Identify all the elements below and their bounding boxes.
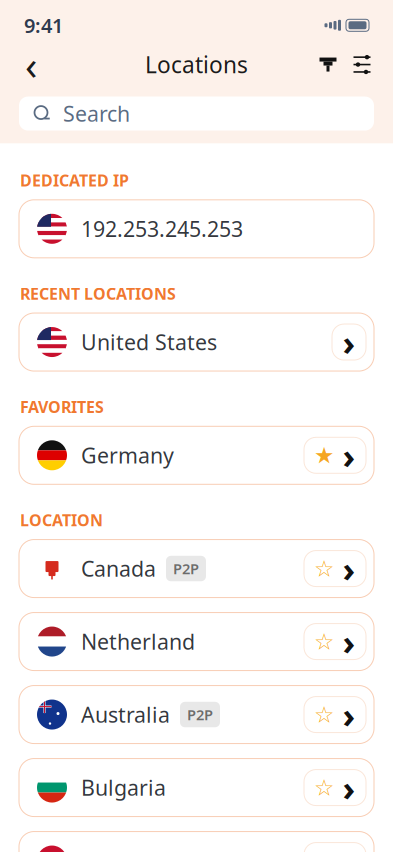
- button[interactable]: Filter: [311, 48, 345, 82]
- staticText: RECENT LOCATIONS: [20, 283, 176, 304]
- staticText: ›: [342, 837, 355, 852]
- staticText: Germany: [81, 441, 174, 469]
- staticText: ☆: [314, 775, 334, 800]
- button[interactable]: Netherland: [0, 613, 393, 671]
- button[interactable]: 192.253.245.253: [0, 200, 393, 258]
- staticText: 192.253.245.253: [81, 215, 243, 243]
- staticText: ☆: [314, 556, 334, 581]
- button[interactable]: Denmark: [0, 832, 393, 852]
- staticText: 9:41: [24, 12, 63, 39]
- staticText: ›: [342, 319, 355, 365]
- button[interactable]: Australia: [0, 686, 393, 744]
- button[interactable]: Search: [0, 97, 393, 131]
- staticText: ›: [342, 545, 355, 591]
- button[interactable]: Bulgaria: [0, 759, 393, 817]
- button[interactable]: Back: [14, 48, 48, 82]
- staticText: LOCATION: [20, 509, 103, 530]
- button[interactable]: United States: [0, 313, 393, 371]
- staticText: ★: [314, 775, 334, 800]
- staticText: Locations: [145, 49, 248, 80]
- staticText: Australia: [81, 700, 170, 729]
- staticText: Netherland: [81, 627, 195, 656]
- staticText: ★: [314, 702, 334, 727]
- staticText: P2P: [187, 705, 213, 724]
- staticText: ›: [342, 691, 355, 737]
- staticText: ☆: [314, 629, 334, 654]
- staticText: Bulgaria: [81, 773, 166, 802]
- staticText: FAVORITES: [20, 396, 104, 417]
- staticText: ‹: [25, 38, 37, 91]
- staticText: ›: [342, 618, 355, 664]
- button[interactable]: Germany: [0, 426, 393, 484]
- staticText: DEDICATED IP: [20, 170, 129, 191]
- staticText: ★: [314, 629, 334, 654]
- staticText: Search: [63, 99, 130, 128]
- button[interactable]: Canada: [0, 540, 393, 598]
- staticText: ›: [342, 764, 355, 810]
- staticText: ☆: [314, 702, 334, 727]
- staticText: Canada: [81, 554, 156, 583]
- staticText: United States: [81, 328, 217, 356]
- staticText: ★: [314, 442, 334, 468]
- staticText: ›: [342, 432, 355, 478]
- staticText: ★: [314, 556, 334, 581]
- staticText: P2P: [173, 559, 199, 578]
- button[interactable]: Settings: [345, 48, 379, 82]
